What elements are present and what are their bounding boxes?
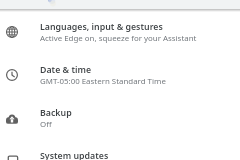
staticText: Off [40,119,52,130]
button[interactable]: System updates [0,140,240,160]
button[interactable]: Date & time [0,54,240,97]
staticText: Active Edge on, squeeze for your Assista… [40,33,197,44]
staticText: System updates [40,150,109,160]
staticText: Languages, input & gestures [40,21,163,33]
staticText: GMT-05:00 Eastern Standard Time [40,76,166,87]
staticText: Backup [40,107,72,119]
button[interactable]: Backup [0,97,240,140]
button[interactable]: Languages, input & gestures [0,11,240,54]
staticText: Date & time [40,64,92,76]
